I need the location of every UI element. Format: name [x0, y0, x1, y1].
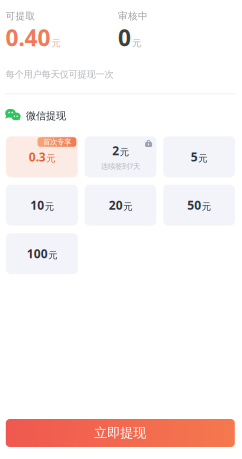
staticText: 元 — [120, 146, 129, 158]
staticText: 元 — [51, 37, 60, 49]
button[interactable]: 100 — [6, 233, 78, 274]
button[interactable]: 2 — [85, 136, 156, 177]
staticText: 可提取 — [6, 10, 36, 22]
staticText: 元 — [48, 249, 57, 261]
staticText: 立即提现 — [94, 425, 146, 441]
staticText: 元 — [46, 152, 55, 164]
staticText: 5 — [191, 149, 198, 165]
staticText: 0.3 — [29, 149, 46, 165]
button[interactable]: 0.3 — [6, 136, 78, 177]
staticText: 2 — [112, 142, 119, 159]
staticText: 10 — [30, 197, 44, 213]
staticText: 每个用户每天仅可提现一次 — [5, 68, 113, 80]
staticText: 连续签到7天 — [101, 161, 140, 171]
staticText: 元 — [123, 201, 132, 213]
button[interactable]: 立即提现 — [6, 419, 235, 447]
staticText: 元 — [132, 37, 141, 49]
staticText: 100 — [27, 245, 48, 262]
button[interactable]: 10 — [6, 185, 78, 226]
button[interactable]: 50 — [163, 185, 235, 226]
staticText: 50 — [187, 197, 201, 213]
button[interactable]: 5 — [163, 136, 235, 177]
staticText: 微信提现 — [26, 109, 66, 122]
staticText: 元 — [202, 201, 211, 213]
staticText: 首次专享 — [43, 137, 71, 147]
staticText: 0 — [118, 22, 131, 53]
staticText: 审核中 — [118, 10, 148, 22]
staticText: 0.40 — [5, 22, 50, 53]
staticText: 20 — [109, 197, 123, 213]
staticText: 元 — [198, 152, 207, 164]
staticText: 元 — [45, 201, 54, 213]
button[interactable]: 20 — [85, 185, 156, 226]
